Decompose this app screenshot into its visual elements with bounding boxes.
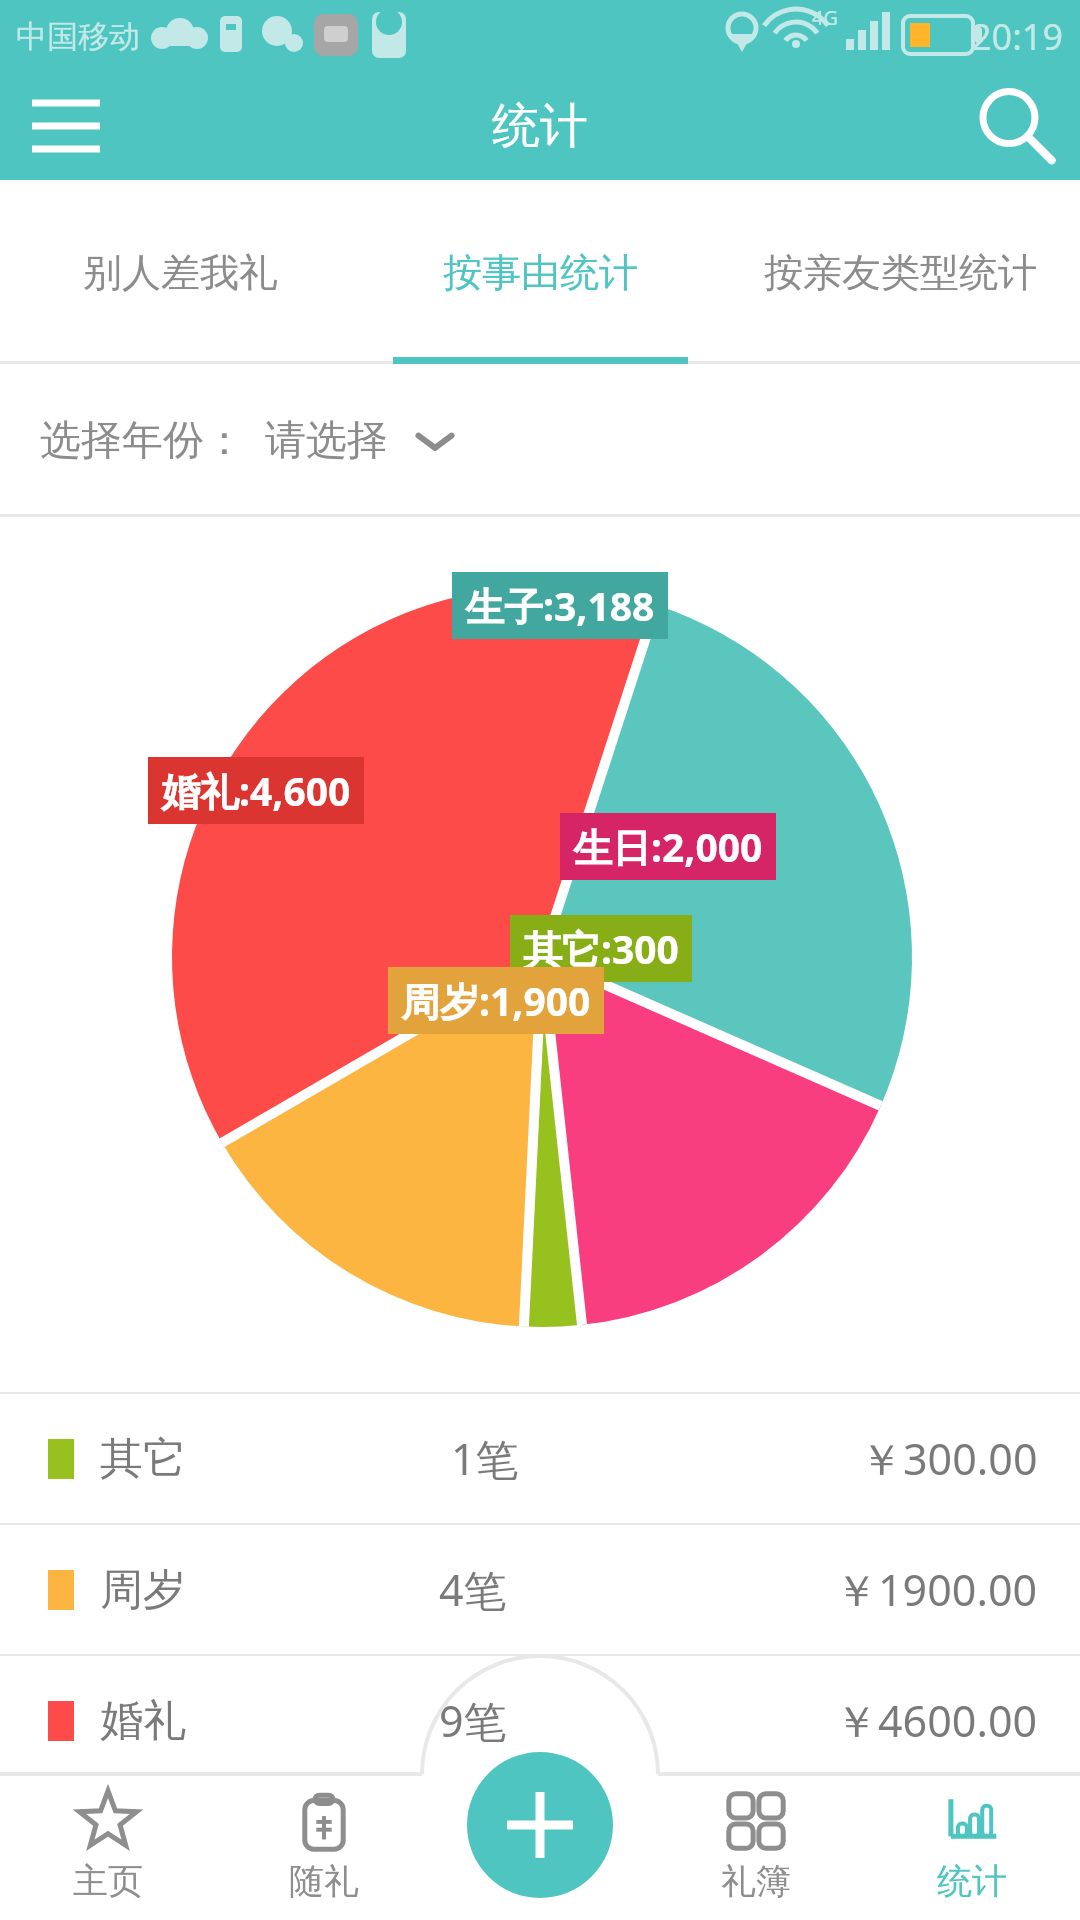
staticText: 随礼 [289,1859,359,1903]
staticText: 按事由统计 [443,248,638,297]
button[interactable]: 主页 [0,1772,216,1920]
button[interactable]: 礼簿 [648,1772,864,1920]
staticText: ￥4600.00 [835,1691,1038,1750]
staticText: 4G [812,4,838,31]
button[interactable]: 其它 [0,1394,1080,1523]
staticText: ￥1900.00 [835,1560,1038,1619]
staticText: ￥300.00 [860,1429,1038,1488]
button[interactable]: 按事由统计 [360,180,720,364]
staticText: 礼簿 [721,1859,791,1903]
staticText: 别人差我礼 [83,248,278,297]
staticText: 统计 [492,96,588,156]
staticText: 1笔 [451,1429,519,1488]
staticText: 其它 [100,1432,186,1486]
staticText: 婚礼:4,600 [161,764,351,817]
staticText: 中国移动 [16,17,140,56]
staticText: 选择年份： [40,415,245,467]
button[interactable]: Add [467,1752,613,1898]
staticText: 生日:2,000 [573,820,763,873]
button[interactable]: 选择年份： [40,415,458,467]
staticText: 4笔 [439,1560,507,1619]
staticText: 主页 [73,1859,143,1903]
button[interactable]: Menu [24,84,108,168]
staticText: 20:19 [971,12,1064,61]
staticText: 周岁 [100,1563,186,1617]
staticText: 统计 [937,1859,1007,1903]
button[interactable]: 按亲友类型统计 [720,180,1080,364]
staticText: 其它:300 [523,922,679,975]
button[interactable]: 周岁 [0,1525,1080,1654]
staticText: 生子:3,188 [465,579,655,632]
button[interactable]: 统计 [864,1772,1080,1920]
button[interactable]: 随礼 [216,1772,432,1920]
staticText: 请选择 [265,415,388,467]
button[interactable]: 别人差我礼 [0,180,360,364]
staticText: 婚礼 [100,1694,186,1748]
staticText: 9笔 [439,1691,507,1750]
staticText: 按亲友类型统计 [764,248,1037,297]
button[interactable]: Search [972,84,1056,168]
button[interactable]: 婚礼 [0,1656,1080,1785]
staticText: 周岁:1,900 [401,974,591,1027]
